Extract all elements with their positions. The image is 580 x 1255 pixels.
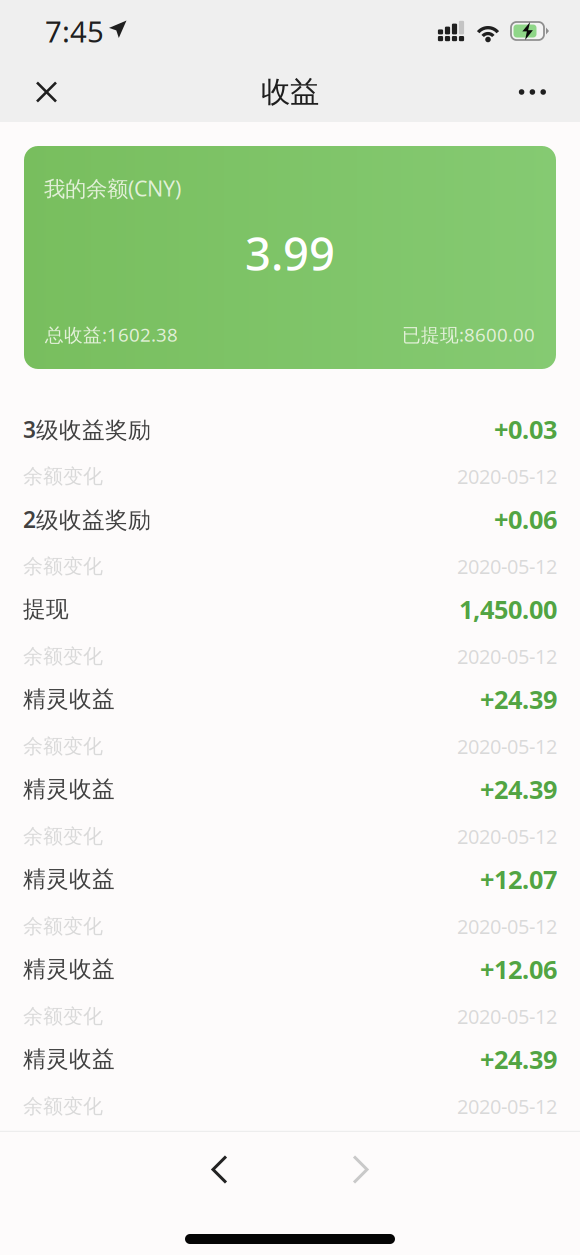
button[interactable]: Next page — [332, 1131, 389, 1220]
staticText: 2020-05-12 — [457, 553, 557, 580]
button[interactable]: 提现 — [0, 582, 580, 672]
staticText: 提现 — [23, 595, 69, 623]
staticText: 余额变化 — [23, 644, 103, 669]
staticText: 精灵收益 — [23, 685, 115, 713]
staticText: 我的余额(CNY) — [44, 174, 181, 202]
staticText: 2020-05-12 — [457, 463, 557, 490]
staticText: 3.99 — [245, 223, 335, 283]
staticText: +12.07 — [480, 862, 557, 896]
staticText: +24.39 — [480, 1042, 557, 1076]
staticText: 精灵收益 — [23, 955, 115, 983]
staticText: 3级收益奖励 — [23, 414, 151, 444]
staticText: 精灵收益 — [23, 865, 115, 893]
staticText: 精灵收益 — [23, 1045, 115, 1073]
staticText: 2020-05-12 — [457, 913, 557, 940]
staticText: 总收益:1602.38 — [45, 322, 178, 347]
staticText: 7:45 — [45, 11, 104, 50]
staticText: 余额变化 — [23, 554, 103, 579]
staticText: +24.39 — [480, 772, 557, 806]
button[interactable]: 精灵收益 — [0, 1032, 580, 1122]
staticText: 2020-05-12 — [457, 733, 557, 760]
staticText: 2020-05-12 — [457, 1093, 557, 1120]
button[interactable]: Previous page — [191, 1131, 248, 1220]
button[interactable]: 精灵收益 — [0, 942, 580, 1032]
staticText: 已提现:8600.00 — [402, 322, 535, 347]
staticText: 余额变化 — [23, 734, 103, 759]
staticText: 2020-05-12 — [457, 643, 557, 670]
staticText: 余额变化 — [23, 1004, 103, 1029]
staticText: 收益 — [261, 74, 319, 110]
button[interactable]: 3级收益奖励 — [0, 402, 580, 492]
button[interactable]: More options — [502, 64, 563, 120]
staticText: +24.39 — [480, 682, 557, 716]
staticText: 余额变化 — [23, 914, 103, 939]
staticText: 2020-05-12 — [457, 823, 557, 850]
staticText: +0.03 — [494, 412, 557, 446]
staticText: 余额变化 — [23, 1094, 103, 1119]
button[interactable]: 2级收益奖励 — [0, 492, 580, 582]
staticText: 1,450.00 — [459, 592, 557, 626]
staticText: 精灵收益 — [23, 775, 115, 803]
button[interactable]: 精灵收益 — [0, 852, 580, 942]
staticText: +12.06 — [480, 952, 557, 986]
button[interactable]: 精灵收益 — [0, 762, 580, 852]
staticText: +0.06 — [494, 502, 557, 536]
button[interactable]: Close — [20, 63, 73, 120]
staticText: 2020-05-12 — [457, 1003, 557, 1030]
staticText: 2级收益奖励 — [23, 504, 151, 534]
staticText: 余额变化 — [23, 824, 103, 849]
staticText: 余额变化 — [23, 464, 103, 489]
button[interactable]: 精灵收益 — [0, 672, 580, 762]
